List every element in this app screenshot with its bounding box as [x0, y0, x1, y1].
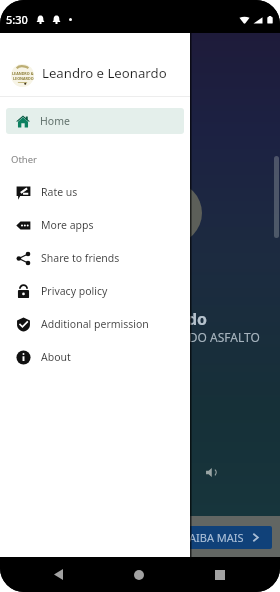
button[interactable]: Back: [40, 557, 76, 592]
staticText: More apps: [41, 218, 94, 232]
staticText: LEONARDO: [13, 76, 34, 81]
staticText: Leandro e Leonardo: [42, 64, 167, 82]
staticText: O REI DO ASFALTO: [155, 329, 260, 345]
staticText: Additional permission: [41, 317, 149, 331]
staticText: Home: [40, 114, 70, 128]
staticText: Share to friends: [41, 251, 120, 265]
staticText: Rate us: [41, 185, 78, 199]
staticText: Other: [11, 153, 38, 166]
button[interactable]: Privacy policy: [0, 275, 190, 307]
button[interactable]: Additional permission: [0, 308, 190, 340]
button[interactable]: Recent apps: [202, 557, 238, 592]
staticText: 5:30: [6, 12, 28, 27]
button[interactable]: About: [0, 341, 190, 373]
staticText: Privacy policy: [41, 284, 108, 298]
staticText: About: [41, 350, 71, 364]
button[interactable]: More apps: [0, 209, 190, 241]
button[interactable]: Home: [121, 557, 157, 592]
button[interactable]: Home: [6, 108, 184, 134]
button[interactable]: Share to friends: [0, 242, 190, 274]
staticText: LEANDRO &: [12, 71, 34, 76]
button[interactable]: SAIBA MAIS: [176, 526, 272, 549]
staticText: SAIBA MAIS: [183, 530, 244, 545]
staticText: Relembrando: [100, 308, 208, 330]
button[interactable]: Rate us: [0, 176, 190, 208]
